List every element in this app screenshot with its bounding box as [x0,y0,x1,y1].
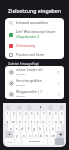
staticText: r [25,119,27,123]
staticText: ?123 [7,140,13,143]
staticText: i [49,119,50,123]
staticText: , [18,140,19,144]
staticText: k [52,126,54,130]
button[interactable]: Favorit [55,69,61,75]
button[interactable]: nlnese Leader ist? OktOne kg! [5,66,64,77]
staticText: »Doppelpunkt« 3 [16,35,40,39]
button[interactable]: h [38,124,43,131]
staticText: Weggeworfen | I [16,90,42,94]
staticText: m [52,133,56,137]
button[interactable]: e [17,117,22,124]
button[interactable]: Zielsetzung [5,41,64,50]
button[interactable]: z [35,117,40,124]
staticText: Zielsetzung eingeben [8,7,62,14]
button[interactable]: Favorit [55,80,61,86]
button[interactable]: Sticker [48,105,52,109]
button[interactable]: f [26,124,31,131]
button[interactable]: 4 [23,111,28,117]
button[interactable]: q [5,117,10,124]
staticText: a [10,126,12,130]
staticText: 5 [31,112,33,116]
button[interactable]: n [45,131,50,138]
button[interactable]: i [47,117,52,124]
staticText: e [19,119,21,123]
button[interactable]: k [50,124,55,131]
button[interactable]: m [51,131,56,138]
button[interactable]: v [33,131,38,138]
staticText: Heruntergefallen [16,79,42,83]
button[interactable]: 5 [29,111,34,117]
button[interactable]: Position ad Serie auswählen [5,50,64,59]
staticText: x [23,133,25,137]
button[interactable]: x [21,131,26,138]
button[interactable]: y [14,131,20,138]
button[interactable]: Suchen [5,18,64,27]
button[interactable]: Spracheingabe [38,105,42,109]
staticText: 7 [43,112,45,116]
button[interactable]: b [39,131,44,138]
staticText: Ichwaid auswählen [16,20,49,25]
staticText: t [31,119,33,123]
staticText: j [46,126,47,130]
staticText: 6 [37,112,39,116]
button[interactable]: 0 [59,111,64,117]
staticText: d [21,126,24,130]
button[interactable]: a [8,124,13,131]
staticText: Zielwert [16,94,26,97]
staticText: f [28,126,30,130]
staticText: Zuletzt hinzugefügt [8,61,39,65]
button[interactable]: Löschen [57,131,64,138]
button[interactable]: 3 [17,111,22,117]
button[interactable]: o [53,117,58,124]
button[interactable]: 2 [11,111,16,117]
button[interactable]: 8 [47,111,52,117]
button[interactable]: s [14,124,19,131]
button[interactable]: l [56,124,61,131]
button[interactable]: g [32,124,37,131]
button[interactable]: d [20,124,25,131]
button[interactable]: w [11,117,16,124]
button[interactable]: Mehr [59,105,63,109]
staticText: 4 [25,112,27,116]
staticText: u [42,119,45,123]
staticText: Zielsetzung [16,43,36,48]
staticText: n [46,133,49,137]
button[interactable]: Einstellungen [27,105,31,109]
staticText: nlnese Leader ist? OktOne kg! [16,68,55,72]
staticText: 3 [19,112,21,116]
button[interactable]: c [27,131,32,138]
button[interactable]: 6 [35,111,40,117]
button[interactable]: Favorit [55,91,61,97]
button[interactable]: ?123 [5,138,14,145]
button[interactable]: Ich? Was besorgt heute [5,27,64,41]
button[interactable]: 7 [41,111,46,117]
button[interactable]: Weggeworfen | I [5,88,64,99]
staticText: 9 [55,112,57,116]
button[interactable]: r [23,117,28,124]
button[interactable]: Umschalt [5,131,13,138]
button[interactable]: . [48,138,54,145]
staticText: q [6,119,9,123]
staticText: 0 [61,112,63,116]
button[interactable]: p [59,117,64,124]
button[interactable]: Eingabe [55,138,64,145]
button[interactable]: , [15,138,21,145]
staticText: v [35,133,37,137]
staticText: y [16,133,18,137]
button[interactable]: Leerzeichen [22,138,47,145]
staticText: z [37,119,39,123]
staticText: s [16,126,18,130]
staticText: . [51,140,52,144]
button[interactable]: t [29,117,34,124]
staticText: 1 [7,112,9,116]
button[interactable]: Heruntergefallen [5,77,64,88]
staticText: Ich? Was besorgt heute [16,29,56,34]
button[interactable]: 9 [53,111,58,117]
button[interactable]: 1 [5,111,10,117]
button[interactable]: u [41,117,46,124]
staticText: 8 [49,112,51,116]
button[interactable]: GIF [17,105,21,109]
staticText: g [33,126,36,130]
button[interactable]: j [44,124,49,131]
button[interactable]: Emoji [6,105,10,109]
